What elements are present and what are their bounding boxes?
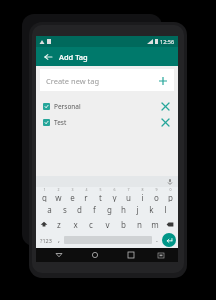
staticText: r (84, 192, 88, 202)
button[interactable]: f (87, 202, 102, 217)
staticText: u (126, 192, 131, 202)
button[interactable]: Enter (162, 233, 176, 247)
button[interactable]: 8 (135, 187, 149, 202)
staticText: p (168, 192, 173, 202)
button[interactable]: m (147, 217, 163, 232)
staticText: Personal (54, 102, 81, 111)
button[interactable]: 5 (93, 187, 107, 202)
staticText: Test (54, 118, 67, 127)
button[interactable]: h (116, 202, 130, 217)
staticText: d (77, 204, 82, 215)
button[interactable]: Create new tag (40, 69, 174, 91)
button[interactable]: 1 (37, 187, 51, 202)
staticText: g (107, 204, 112, 215)
button[interactable]: c (83, 217, 99, 232)
staticText: 4 (85, 187, 88, 192)
button[interactable]: Remove Personal (160, 101, 171, 112)
button[interactable]: b (115, 217, 131, 232)
button[interactable]: Keyboard (156, 250, 166, 260)
staticText: 0 (169, 187, 172, 192)
staticText: t (99, 192, 102, 202)
staticText: s (63, 204, 67, 215)
button[interactable]: s (57, 202, 72, 217)
staticText: m (151, 219, 159, 230)
button[interactable]: . (152, 233, 162, 247)
button[interactable]: Home (89, 249, 101, 261)
staticText: x (73, 219, 78, 230)
button[interactable]: 4 (79, 187, 93, 202)
button[interactable]: z (51, 217, 67, 232)
staticText: v (105, 219, 110, 230)
button[interactable]: Back (36, 47, 178, 66)
button[interactable]: Personal (36, 98, 178, 114)
button[interactable]: , (54, 233, 64, 247)
staticText: 3 (71, 187, 74, 192)
button[interactable]: g (102, 202, 116, 217)
button[interactable]: Delete (163, 217, 177, 232)
button[interactable]: v (99, 217, 115, 232)
button[interactable]: 9 (149, 187, 163, 202)
button[interactable]: 3 (65, 187, 79, 202)
staticText: 1 (43, 187, 46, 192)
staticText: c (89, 219, 93, 230)
staticText: z (57, 219, 61, 230)
staticText: 2 (57, 187, 60, 192)
staticText: l (164, 204, 167, 215)
button[interactable]: 2 (51, 187, 65, 202)
staticText: 5 (99, 187, 102, 192)
button[interactable]: Back (53, 249, 65, 261)
button[interactable]: Recents (125, 249, 137, 261)
staticText: f (93, 204, 96, 215)
staticText: j (136, 204, 139, 215)
button[interactable]: ?123 (38, 233, 54, 247)
staticText: ?123 (40, 237, 52, 244)
button[interactable]: Back (41, 50, 54, 63)
button[interactable]: Remove Test (160, 117, 171, 128)
button[interactable]: 0 (163, 187, 177, 202)
button[interactable]: x (67, 217, 83, 232)
button[interactable]: Voice input (165, 177, 174, 186)
staticText: , (58, 235, 60, 245)
staticText: e (70, 192, 75, 202)
button[interactable]: Shift (37, 217, 51, 232)
staticText: b (121, 219, 126, 230)
staticText: Create new tag (46, 76, 100, 86)
staticText: y (112, 192, 117, 202)
staticText: a (47, 204, 52, 215)
staticText: w (55, 192, 62, 202)
staticText: 8 (141, 187, 144, 192)
staticText: i (141, 192, 144, 202)
staticText: h (121, 204, 126, 215)
button[interactable]: n (131, 217, 147, 232)
staticText: 6 (113, 187, 116, 192)
staticText: 9 (155, 187, 158, 192)
button[interactable]: l (158, 202, 172, 217)
button[interactable]: d (72, 202, 87, 217)
staticText: 7 (127, 187, 130, 192)
button[interactable]: Add tag (157, 75, 168, 86)
button[interactable]: 6 (107, 187, 121, 202)
button[interactable]: Test (36, 114, 178, 130)
staticText: q (42, 192, 47, 202)
button[interactable]: a (42, 202, 57, 217)
staticText: k (149, 204, 154, 215)
staticText: . (156, 235, 158, 245)
button[interactable]: 7 (121, 187, 135, 202)
staticText: n (137, 219, 142, 230)
staticText: 12:56 (160, 38, 175, 45)
button[interactable]: k (144, 202, 158, 217)
button[interactable]: j (130, 202, 144, 217)
staticText: Add Tag (59, 52, 88, 62)
staticText: o (154, 192, 159, 202)
